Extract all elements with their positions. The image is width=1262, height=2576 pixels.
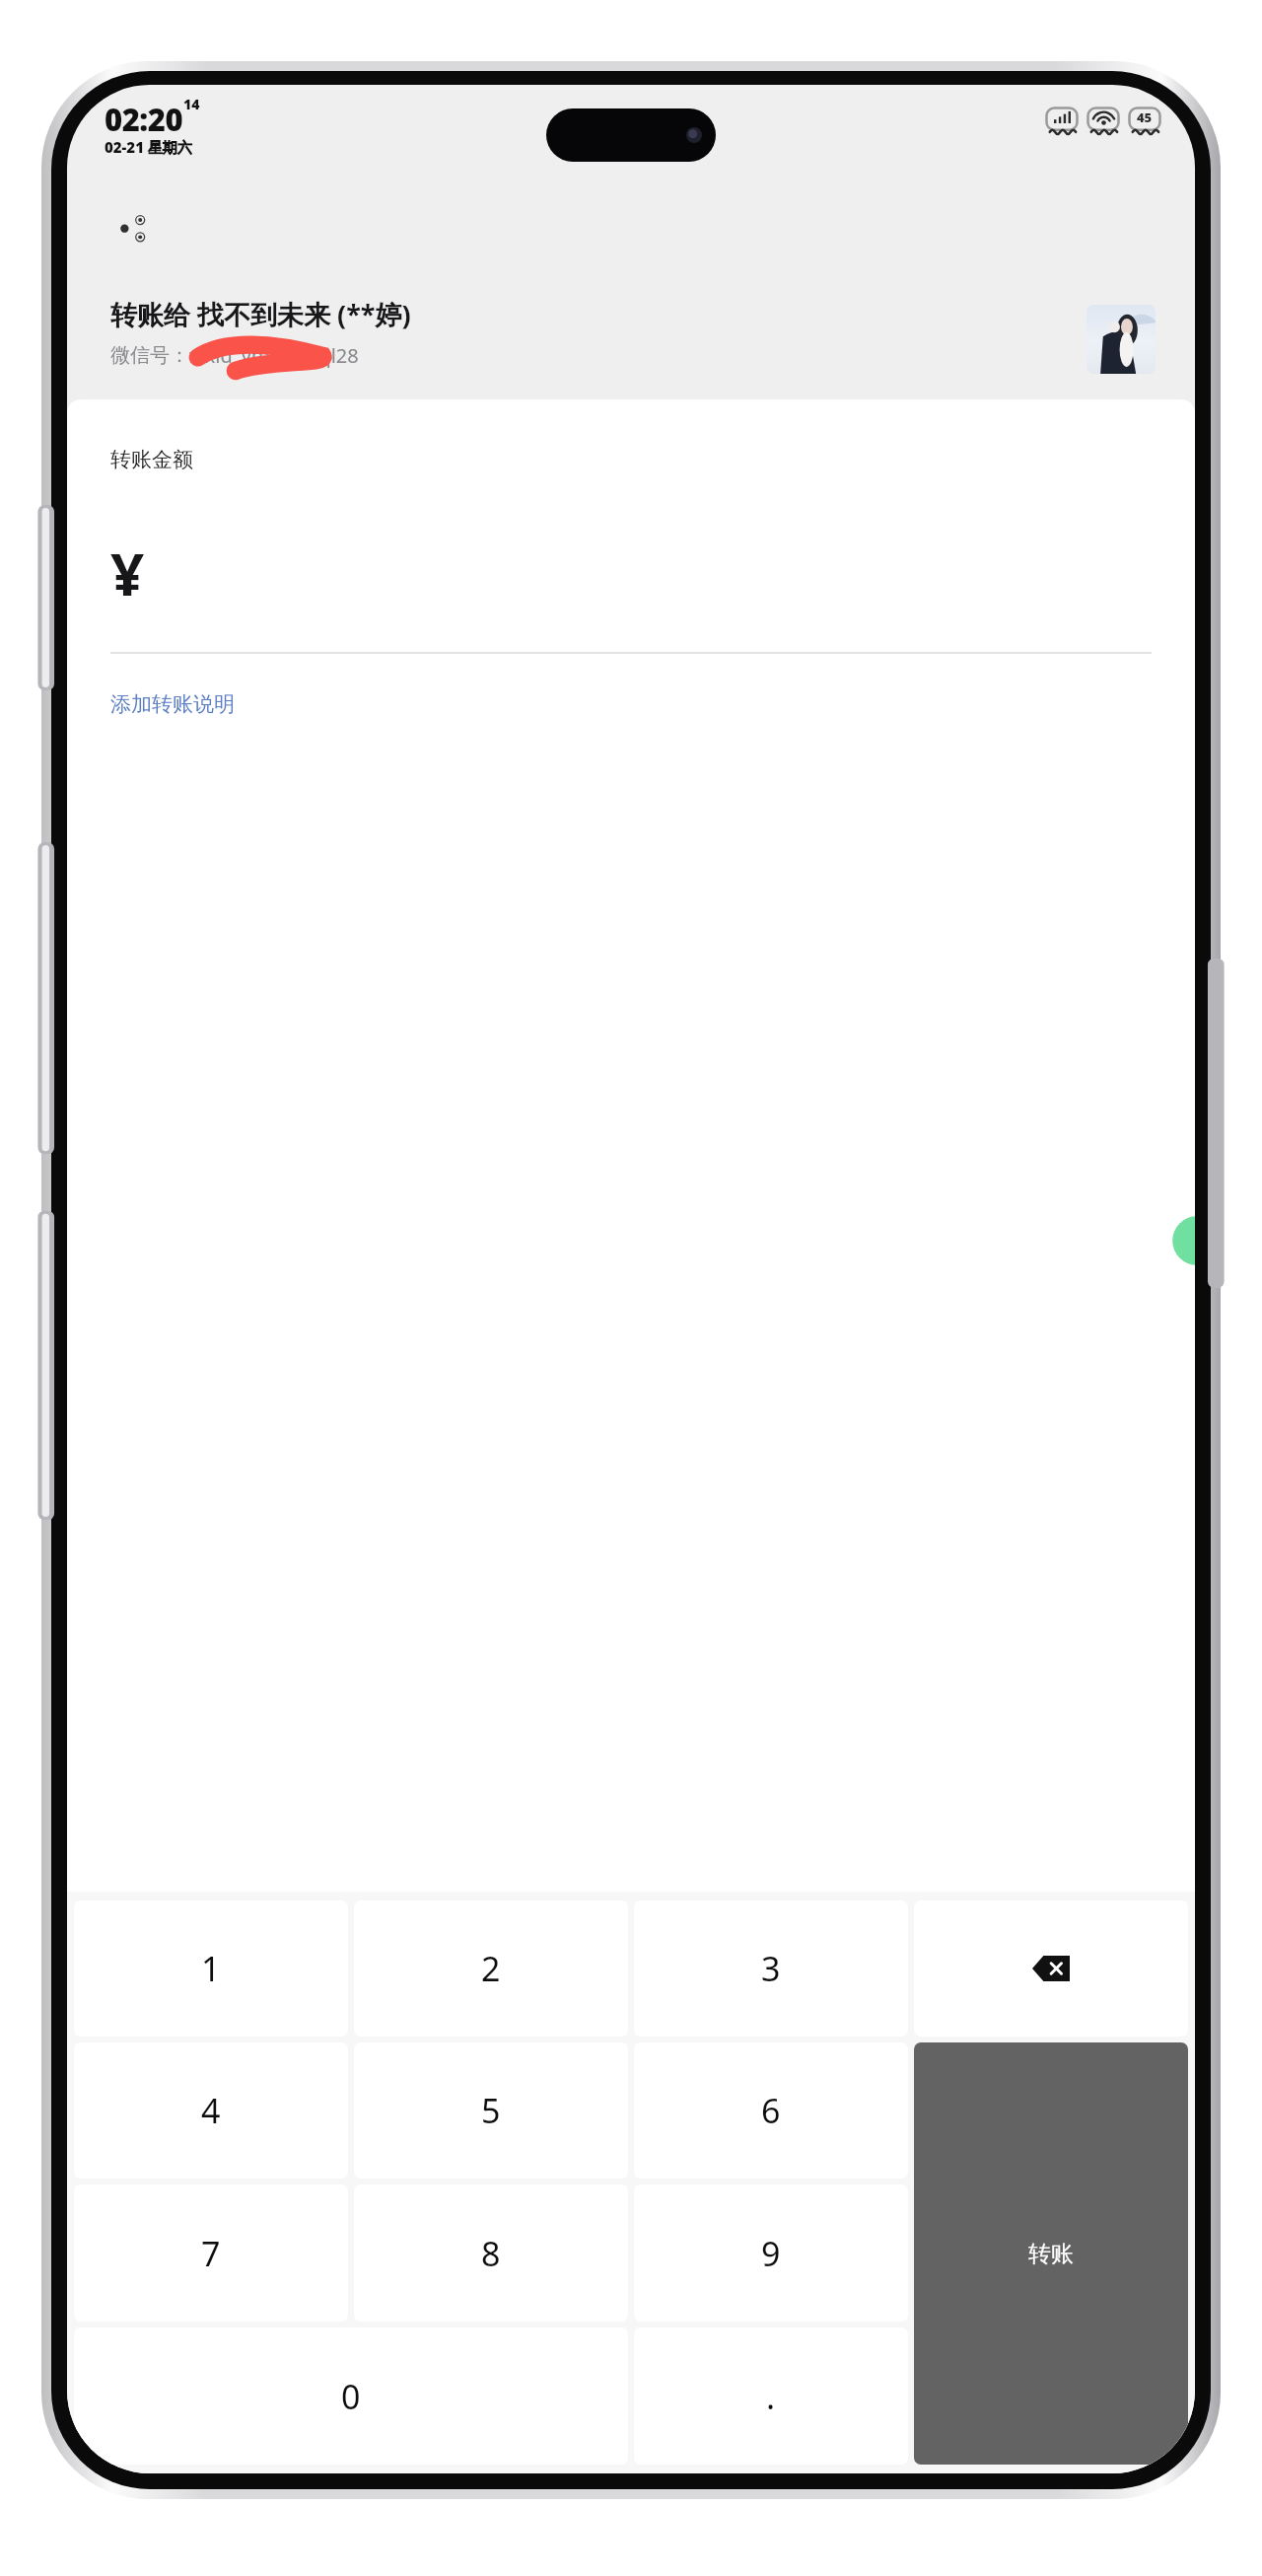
button[interactable]: 添加转账说明: [110, 691, 235, 717]
button[interactable]: 转账金额: [110, 447, 193, 472]
staticText: .: [766, 2374, 776, 2419]
button[interactable]: 3: [634, 1900, 908, 2037]
staticText: wxid_vn83ka0ql28: [189, 342, 359, 369]
staticText: 02-21 星期六: [105, 137, 192, 157]
staticText: 1: [201, 1946, 221, 1991]
button[interactable]: Contact avatar: [1087, 305, 1156, 374]
staticText: 0: [341, 2374, 361, 2419]
staticText: 8: [481, 2231, 501, 2276]
button[interactable]: 7: [74, 2184, 348, 2322]
staticText: 7: [201, 2231, 221, 2276]
staticText: 微信号：: [110, 343, 189, 368]
button[interactable]: 5: [354, 2042, 628, 2179]
button[interactable]: 0: [74, 2327, 628, 2465]
button[interactable]: Share: [110, 205, 156, 250]
button[interactable]: 1: [74, 1900, 348, 2037]
button[interactable]: 8: [354, 2184, 628, 2322]
staticText: 45: [1137, 108, 1153, 126]
staticText: 14: [183, 95, 200, 113]
staticText: 转账: [1028, 2240, 1074, 2268]
button[interactable]: 4: [74, 2042, 348, 2179]
button[interactable]: 转账: [914, 2042, 1188, 2465]
staticText: 6: [761, 2088, 781, 2133]
button[interactable]: 6: [634, 2042, 908, 2179]
button[interactable]: 2: [354, 1900, 628, 2037]
staticText: 5: [481, 2088, 501, 2133]
staticText: 3: [761, 1946, 781, 1991]
staticText: 9: [761, 2231, 781, 2276]
staticText: 2: [481, 1946, 501, 1991]
staticText: ¥: [110, 533, 145, 613]
button[interactable]: 9: [634, 2184, 908, 2322]
button[interactable]: Backspace: [914, 1900, 1188, 2037]
button[interactable]: 转账给 找不到未来 (**婷): [110, 296, 1156, 382]
staticText: 4: [201, 2088, 221, 2133]
staticText: 转账给 找不到未来 (**婷): [110, 296, 411, 332]
button[interactable]: .: [634, 2327, 908, 2465]
staticText: 02:20: [105, 99, 183, 140]
